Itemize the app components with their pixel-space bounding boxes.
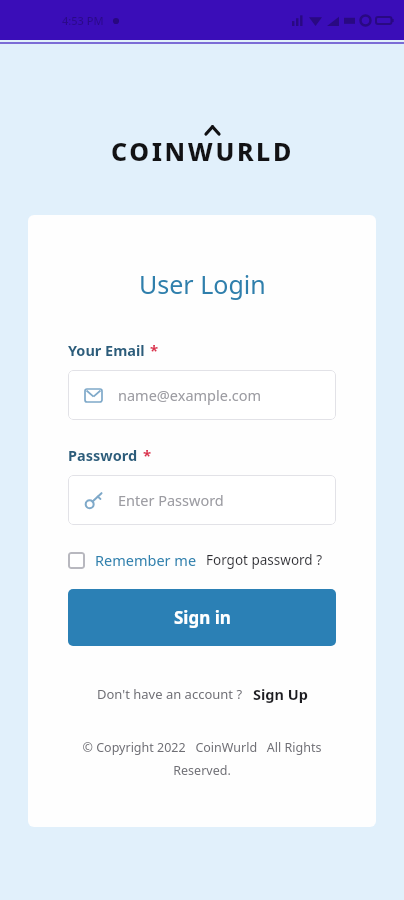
staticText: COINWURLD xyxy=(111,134,294,168)
staticText: Remember me xyxy=(95,550,197,570)
staticText: © Copyright 2022 CoinWurld All Rights Re… xyxy=(68,739,336,779)
staticText: * xyxy=(143,445,152,465)
button[interactable]: Forgot password ? xyxy=(206,551,323,569)
staticText: Sign in xyxy=(174,606,231,629)
staticText: * xyxy=(150,340,159,360)
staticText: 4:53 PM xyxy=(62,13,104,28)
button[interactable]: name@example.com xyxy=(68,370,336,420)
button[interactable]: Enter Password xyxy=(68,475,336,525)
staticText: User Login xyxy=(139,267,266,301)
staticText: name@example.com xyxy=(118,385,262,405)
staticText: Password xyxy=(68,445,138,465)
button[interactable]: Remember me xyxy=(68,550,197,570)
staticText: Your Email xyxy=(68,340,145,360)
staticText: Don't have an account ? xyxy=(97,685,243,703)
button[interactable]: Sign in xyxy=(68,589,336,646)
staticText: Enter Password xyxy=(118,490,224,510)
button[interactable]: Sign Up xyxy=(253,684,308,704)
